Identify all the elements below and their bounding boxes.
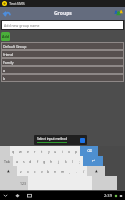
button[interactable]: n [52, 166, 59, 176]
button[interactable]: ↵ [83, 156, 103, 166]
staticText: s [23, 159, 25, 164]
button[interactable]: Select input method [34, 135, 87, 145]
button[interactable]: Add [1, 32, 10, 41]
staticText: k [65, 159, 67, 164]
staticText: f [37, 159, 39, 164]
staticText: q [12, 149, 15, 154]
staticText: n [54, 169, 57, 174]
button[interactable]: m [59, 166, 66, 176]
button[interactable]: Back [0, 7, 13, 20]
button[interactable]: w [17, 146, 24, 156]
button[interactable]: d [27, 156, 34, 166]
staticText: friend [3, 52, 13, 57]
button[interactable]: o [66, 146, 73, 156]
button[interactable]: s [20, 156, 27, 166]
button[interactable]: / [80, 166, 87, 176]
button[interactable]: h [48, 156, 55, 166]
staticText: TextSMS [9, 1, 25, 6]
staticText: 2:39 [104, 193, 112, 198]
staticText: Add [2, 34, 9, 39]
button[interactable]: f [34, 156, 41, 166]
button[interactable]: , [66, 166, 73, 176]
button[interactable]: Home [14, 192, 21, 199]
button[interactable]: Recent apps [26, 192, 33, 199]
staticText: b [47, 169, 50, 174]
button[interactable]: Tab [0, 156, 13, 166]
button[interactable]: 123 [18, 176, 28, 190]
button[interactable]: z [17, 166, 24, 176]
staticText: d [29, 159, 32, 164]
button[interactable]: a [13, 156, 20, 166]
button[interactable]: p [73, 146, 80, 156]
button[interactable]: ▲ [0, 166, 17, 176]
button[interactable]: l [69, 156, 76, 166]
staticText: v [41, 169, 43, 174]
staticText: r [34, 149, 36, 154]
staticText: 123 [20, 181, 27, 186]
staticText: ↵ [92, 159, 95, 163]
staticText: b [3, 76, 6, 81]
button[interactable]: b [45, 166, 52, 176]
button[interactable]: q [10, 146, 17, 156]
staticText: a [3, 68, 5, 73]
staticText: o [68, 149, 71, 154]
button[interactable]: Hide keyboard [2, 192, 9, 199]
button[interactable]: Add new group name [2, 21, 123, 29]
button[interactable]: e [24, 146, 31, 156]
staticText: l [72, 159, 73, 164]
button[interactable]: Default Group [1, 42, 124, 50]
staticText: a [16, 159, 18, 164]
button[interactable]: ; [76, 156, 83, 166]
staticText: z [20, 169, 22, 174]
staticText: w [19, 149, 22, 154]
staticText: ; [79, 159, 80, 164]
staticText: Default Group [3, 44, 27, 49]
staticText: y [48, 149, 50, 154]
staticText: , [69, 169, 70, 174]
staticText: Add new group name [4, 23, 40, 28]
button[interactable]: v [38, 166, 45, 176]
button[interactable]: Family [1, 58, 124, 66]
button[interactable]: b [1, 74, 124, 82]
button[interactable]: c [31, 166, 38, 176]
button[interactable]: j [55, 156, 62, 166]
button[interactable]: r [31, 146, 38, 156]
button[interactable]: k [62, 156, 69, 166]
button[interactable]: i [59, 146, 66, 156]
staticText: j [58, 159, 59, 164]
staticText: i [62, 149, 63, 154]
button[interactable]: y [45, 146, 52, 156]
staticText: g [43, 159, 46, 164]
button[interactable]: a [1, 66, 124, 74]
staticText: Tab [4, 159, 10, 164]
staticText: e [27, 149, 29, 154]
button[interactable]: t [38, 146, 45, 156]
staticText: h [50, 159, 53, 164]
button[interactable]: u [52, 146, 59, 156]
staticText: / [83, 169, 85, 174]
staticText: ▲ [95, 169, 98, 173]
button[interactable]: g [41, 156, 48, 166]
button[interactable]: Group members [112, 7, 125, 20]
staticText: Groups [54, 10, 72, 17]
staticText: t [41, 149, 43, 154]
staticText: m [61, 169, 65, 174]
button[interactable]: x [24, 166, 31, 176]
button[interactable]: ⌫ [80, 146, 98, 156]
button[interactable]: ▲ [87, 166, 105, 176]
staticText: ▲ [7, 169, 10, 173]
staticText: . [76, 169, 77, 174]
staticText: Select input method [37, 137, 68, 141]
staticText: ⌫ [87, 149, 92, 153]
staticText: x [27, 169, 29, 174]
staticText: Family [3, 60, 14, 65]
button[interactable]: friend [1, 50, 124, 58]
staticText: p [75, 149, 78, 154]
